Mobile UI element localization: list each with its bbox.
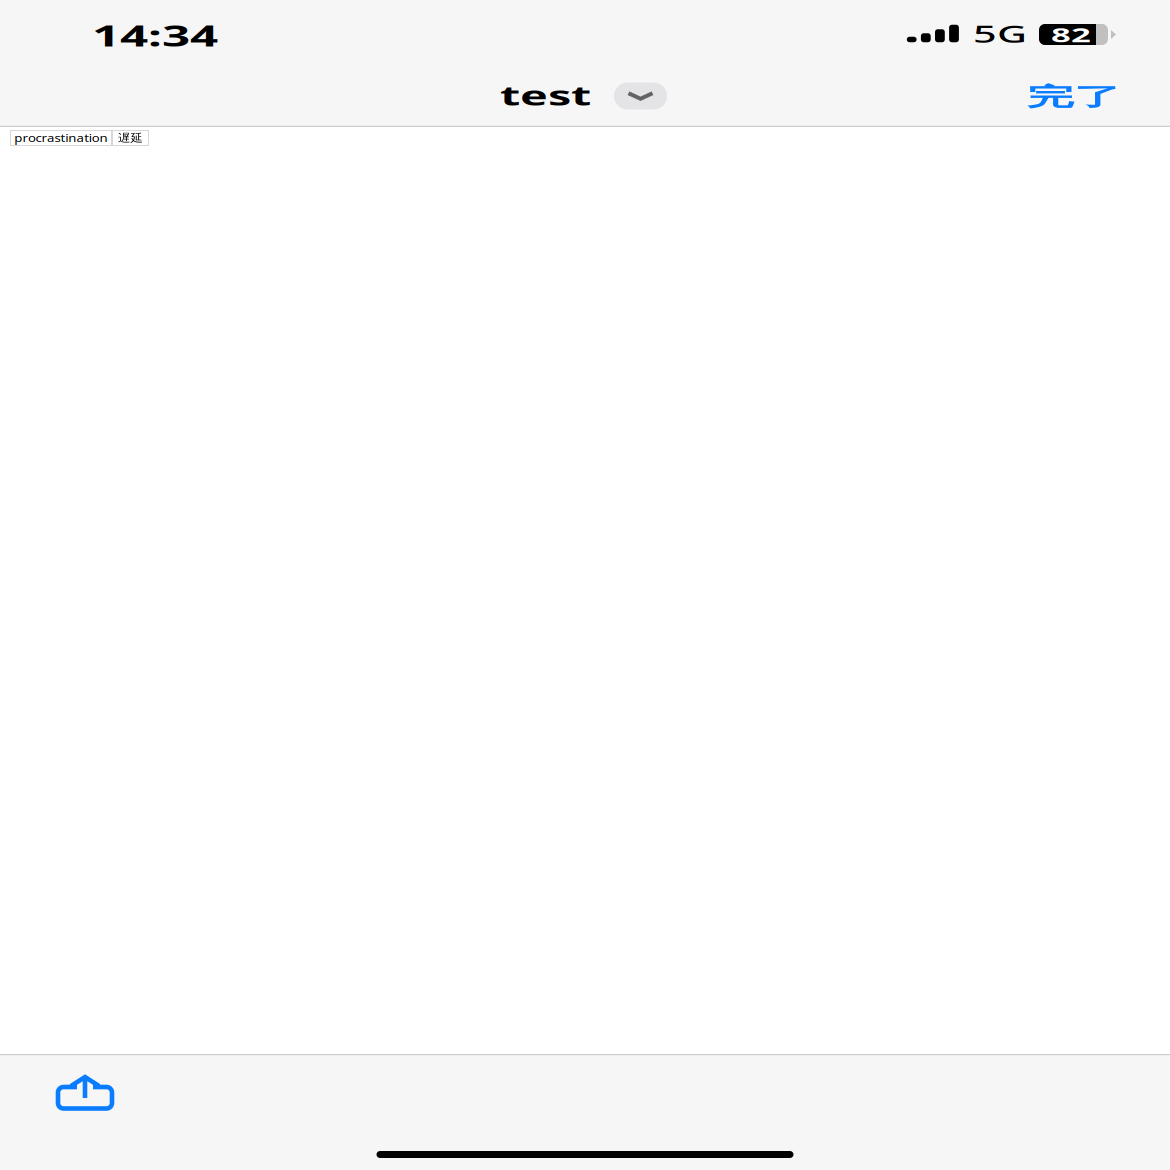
button[interactable]: Show conversation details [607, 81, 660, 108]
button[interactable]: 完了 [1016, 60, 1170, 130]
staticText: procrastination [0, 126, 122, 149]
staticText: 遅延 [110, 126, 150, 150]
staticText: 14:34 [92, 3, 218, 68]
button[interactable]: Share [0, 1054, 134, 1134]
staticText: test [500, 64, 591, 126]
staticText: 5G [973, 6, 1027, 61]
staticText: 82 [1051, 11, 1091, 57]
staticText: 完了 [1027, 68, 1121, 126]
